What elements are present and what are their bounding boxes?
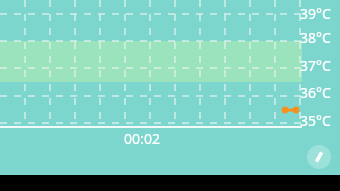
staticText: 39°C xyxy=(300,4,331,23)
staticText: 36°C xyxy=(300,83,331,102)
staticText: 38°C xyxy=(300,28,331,47)
staticText: 00:02 xyxy=(124,129,160,147)
staticText: 35°C xyxy=(300,111,331,130)
staticText: 37°C xyxy=(300,56,331,75)
button[interactable]: Edit xyxy=(307,145,331,169)
